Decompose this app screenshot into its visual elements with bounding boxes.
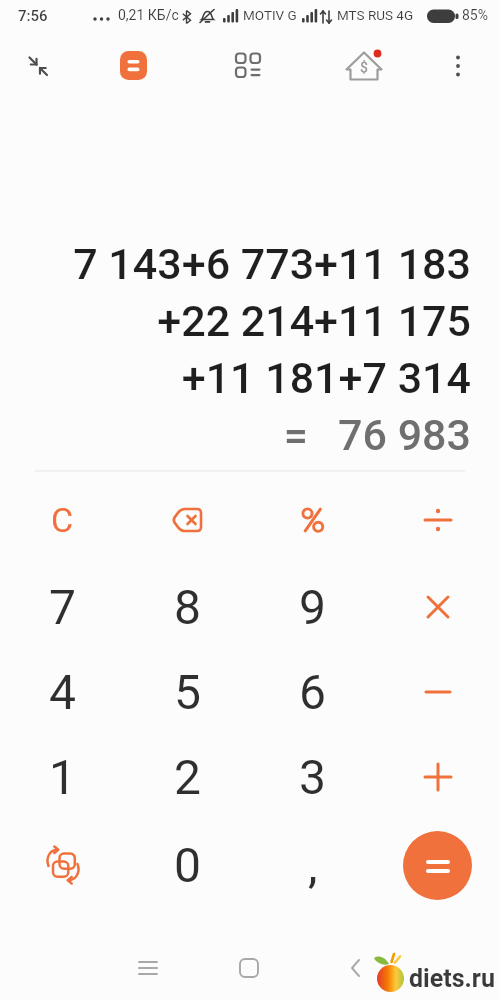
button[interactable] bbox=[120, 51, 147, 80]
button[interactable]: 7 bbox=[0, 564, 125, 650]
staticText: 2 bbox=[174, 749, 201, 805]
button[interactable]: 4 bbox=[0, 649, 125, 735]
button[interactable] bbox=[229, 948, 269, 988]
staticText: 7:56 bbox=[18, 7, 48, 25]
button[interactable] bbox=[375, 734, 500, 820]
button[interactable] bbox=[444, 52, 472, 80]
button[interactable]: 3 bbox=[250, 734, 375, 820]
button[interactable]: C bbox=[0, 477, 125, 563]
staticText: diets.ru bbox=[409, 964, 495, 993]
staticText: MOTIV G bbox=[243, 7, 297, 23]
staticText: 0 bbox=[174, 837, 201, 893]
staticText: 5 bbox=[174, 664, 201, 720]
staticText: 9 bbox=[299, 579, 326, 635]
staticText: 4 bbox=[49, 664, 76, 720]
button[interactable] bbox=[234, 51, 263, 80]
staticText: 6 bbox=[299, 664, 326, 720]
staticText: MTS RUS 4G bbox=[337, 7, 414, 23]
button[interactable] bbox=[0, 822, 125, 908]
button[interactable]: 6 bbox=[250, 649, 375, 735]
button[interactable]: $ bbox=[344, 46, 384, 86]
button[interactable]: 1 bbox=[0, 734, 125, 820]
staticText: 1 bbox=[49, 749, 76, 805]
button[interactable] bbox=[24, 52, 52, 80]
staticText: C bbox=[51, 500, 74, 540]
button[interactable]: 8 bbox=[125, 564, 250, 650]
staticText: $ bbox=[360, 59, 368, 75]
button[interactable] bbox=[125, 477, 250, 563]
button[interactable] bbox=[128, 948, 168, 988]
button[interactable]: 0 bbox=[125, 822, 250, 908]
staticText: 8 bbox=[174, 579, 201, 635]
button[interactable]: 2 bbox=[125, 734, 250, 820]
button[interactable]: , bbox=[250, 822, 375, 908]
button[interactable] bbox=[250, 477, 375, 563]
staticText: 0,21 КБ/с bbox=[118, 7, 179, 23]
button[interactable] bbox=[403, 831, 472, 900]
button[interactable]: 9 bbox=[250, 564, 375, 650]
button[interactable] bbox=[375, 477, 500, 563]
button[interactable] bbox=[375, 564, 500, 650]
staticText: 85% bbox=[462, 7, 488, 23]
button[interactable]: 5 bbox=[125, 649, 250, 735]
staticText: , bbox=[308, 837, 318, 893]
staticText: 7 143+6 773+11 183 +22 214+11 175 +11 18… bbox=[73, 239, 471, 461]
staticText: 3 bbox=[299, 749, 326, 805]
button[interactable] bbox=[375, 649, 500, 735]
staticText: 7 bbox=[49, 579, 76, 635]
button[interactable] bbox=[336, 948, 376, 988]
button[interactable] bbox=[375, 822, 500, 908]
